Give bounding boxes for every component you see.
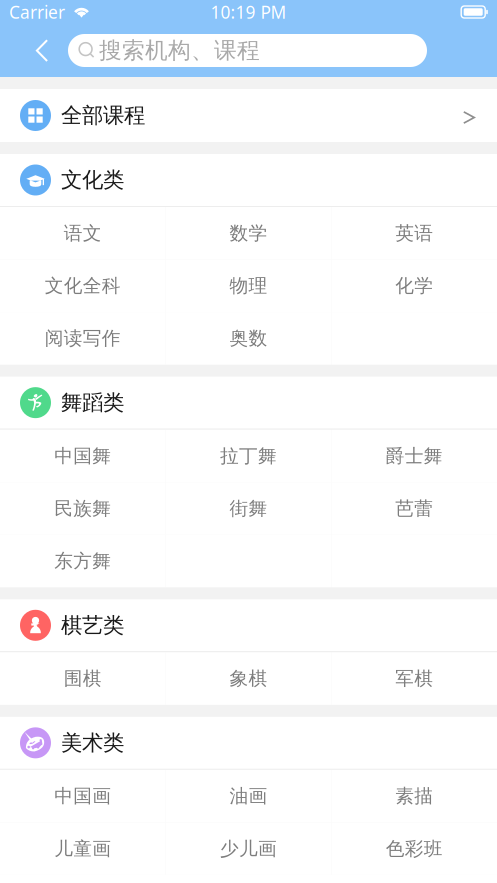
button[interactable]: 油画: [166, 770, 331, 822]
staticText: 围棋: [64, 667, 102, 690]
staticText: 中国舞: [54, 444, 111, 467]
button[interactable]: 爵士舞: [331, 430, 497, 482]
button[interactable]: 色彩班: [331, 822, 497, 875]
staticText: 象棋: [229, 667, 267, 690]
staticText: 东方舞: [54, 550, 111, 572]
staticText: 油画: [229, 785, 267, 808]
button[interactable]: 象棋: [166, 652, 331, 705]
button[interactable]: 英语: [331, 207, 497, 259]
staticText: 搜索机构、课程: [99, 37, 260, 64]
button[interactable]: 文化全科: [0, 260, 166, 312]
staticText: 文化类: [61, 167, 124, 193]
staticText: 美术类: [61, 730, 124, 756]
staticText: 少儿画: [220, 837, 277, 860]
staticText: 爵士舞: [386, 444, 443, 467]
staticText: Carrier: [9, 0, 65, 23]
button[interactable]: 全部课程: [0, 89, 497, 142]
staticText: 文化全科: [45, 274, 121, 297]
button[interactable]: 中国画: [0, 770, 166, 822]
staticText: 奥数: [229, 327, 267, 350]
button[interactable]: 东方舞: [0, 535, 166, 587]
staticText: 拉丁舞: [220, 444, 277, 467]
button[interactable]: 物理: [166, 260, 331, 312]
staticText: 阅读写作: [45, 327, 121, 350]
staticText: 色彩班: [386, 837, 443, 860]
button[interactable]: 街舞: [166, 482, 331, 535]
button[interactable]: 拉丁舞: [166, 430, 331, 482]
button[interactable]: 中国舞: [0, 430, 166, 482]
button[interactable]: 搜索机构、课程: [68, 34, 427, 67]
staticText: 中国画: [54, 785, 111, 808]
button[interactable]: 化学: [331, 260, 497, 312]
button[interactable]: 军棋: [331, 652, 497, 705]
staticText: 化学: [395, 274, 433, 297]
button[interactable]: 数学: [166, 207, 331, 259]
button[interactable]: 语文: [0, 207, 166, 259]
button[interactable]: 阅读写作: [0, 312, 166, 365]
staticText: 英语: [395, 222, 433, 245]
staticText: 物理: [229, 274, 267, 297]
button[interactable]: 芭蕾: [331, 482, 497, 535]
button[interactable]: 民族舞: [0, 482, 166, 535]
staticText: 数学: [229, 222, 267, 245]
staticText: 全部课程: [61, 102, 145, 129]
staticText: 棋艺类: [61, 612, 124, 638]
staticText: 10:19 PM: [210, 0, 286, 23]
button[interactable]: 围棋: [0, 652, 166, 705]
button[interactable]: 奥数: [166, 312, 331, 365]
staticText: 民族舞: [54, 497, 111, 520]
button[interactable]: Back: [21, 28, 63, 72]
button[interactable]: 儿童画: [0, 822, 166, 875]
staticText: 儿童画: [54, 837, 111, 860]
staticText: 素描: [395, 785, 433, 808]
button[interactable]: 少儿画: [166, 822, 331, 875]
button[interactable]: 素描: [331, 770, 497, 822]
staticText: 芭蕾: [395, 497, 433, 520]
staticText: 语文: [64, 222, 102, 245]
staticText: 军棋: [395, 667, 433, 690]
staticText: 舞蹈类: [61, 389, 124, 416]
staticText: 街舞: [229, 497, 267, 520]
